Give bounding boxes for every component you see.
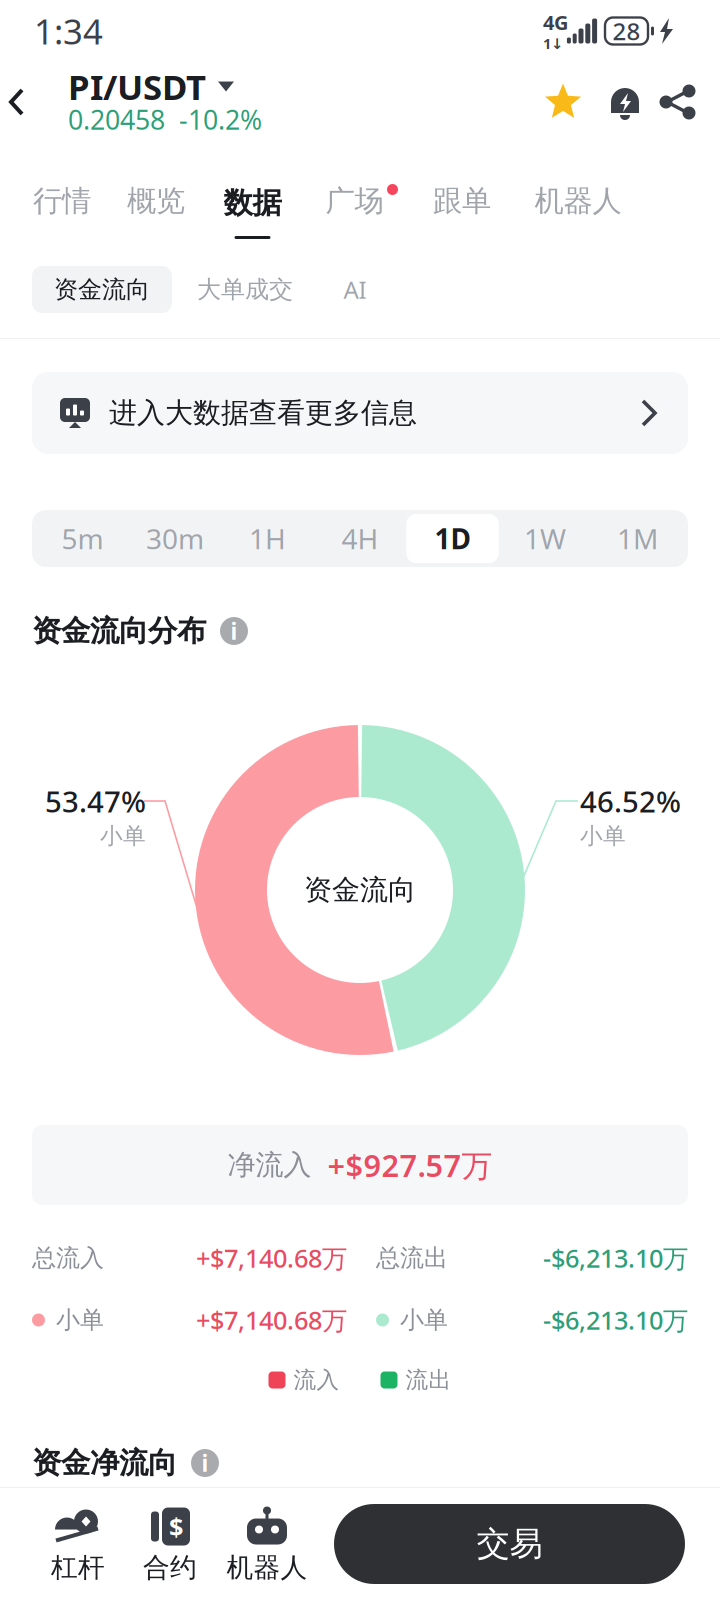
button[interactable]: Back bbox=[0, 62, 48, 142]
button[interactable]: PI/USDT bbox=[68, 62, 368, 142]
staticText: 1D bbox=[434, 520, 470, 557]
button[interactable]: 4H bbox=[314, 514, 406, 563]
staticText: 总流出 bbox=[376, 1243, 448, 1273]
staticText: 53.47% bbox=[45, 781, 146, 820]
staticText: 30m bbox=[146, 520, 204, 557]
staticText: 杠杆 bbox=[51, 1551, 105, 1584]
staticText: 小单 bbox=[580, 822, 626, 850]
staticText: 46.52% bbox=[580, 781, 681, 820]
button[interactable]: 进入大数据查看更多信息 bbox=[32, 372, 688, 454]
button[interactable]: Price alert bbox=[594, 62, 656, 142]
staticText: 1H bbox=[249, 520, 286, 557]
staticText: -$6,213.10万 bbox=[543, 1241, 688, 1275]
button[interactable]: Add to favourites bbox=[532, 62, 594, 142]
staticText: 小单 bbox=[400, 1305, 448, 1335]
button[interactable]: 跟单 bbox=[407, 180, 517, 241]
staticText: 1M bbox=[617, 520, 658, 557]
staticText: PI/USDT bbox=[68, 63, 206, 109]
staticText: 小单 bbox=[56, 1305, 104, 1335]
button[interactable]: 杠杆 bbox=[32, 1487, 124, 1600]
button[interactable]: 1M bbox=[591, 514, 684, 563]
button[interactable]: $ bbox=[124, 1487, 216, 1600]
staticText: 行情 bbox=[33, 183, 91, 219]
staticText: 概览 bbox=[127, 183, 185, 219]
staticText: 跟单 bbox=[433, 183, 491, 219]
button[interactable]: Share bbox=[656, 62, 700, 142]
staticText: 28 bbox=[612, 15, 640, 47]
staticText: 1↓ bbox=[543, 33, 563, 53]
button[interactable]: 交易 bbox=[334, 1504, 685, 1584]
button[interactable]: 广场 bbox=[302, 180, 407, 241]
button[interactable]: 1H bbox=[221, 514, 314, 563]
staticText: 1:34 bbox=[34, 8, 103, 54]
staticText: 0.20458 -10.2% bbox=[68, 102, 262, 137]
button[interactable]: 1D bbox=[406, 514, 499, 563]
staticText: 资金流向 bbox=[304, 873, 416, 907]
button[interactable]: 资金流向 bbox=[32, 266, 172, 313]
staticText: 交易 bbox=[476, 1523, 542, 1564]
staticText: 1W bbox=[524, 520, 566, 557]
staticText: 流入 bbox=[293, 1366, 339, 1394]
staticText: 广场 bbox=[325, 183, 383, 219]
staticText: i bbox=[230, 616, 237, 646]
staticText: 4G bbox=[543, 9, 568, 36]
button[interactable]: 大单成交 bbox=[172, 266, 318, 313]
staticText: 进入大数据查看更多信息 bbox=[109, 396, 417, 430]
staticText: 5m bbox=[61, 520, 103, 557]
button[interactable]: 行情 bbox=[15, 180, 109, 241]
staticText: 资金净流向 bbox=[32, 1445, 177, 1481]
staticText: 净流入 bbox=[227, 1148, 311, 1182]
staticText: i bbox=[201, 1448, 208, 1478]
staticText: 合约 bbox=[143, 1551, 197, 1584]
staticText: +$927.57万 bbox=[327, 1145, 492, 1185]
button[interactable]: 30m bbox=[129, 514, 221, 563]
staticText: 4H bbox=[341, 520, 378, 557]
button[interactable]: 1W bbox=[499, 514, 591, 563]
staticText: -$6,213.10万 bbox=[543, 1303, 688, 1337]
button[interactable]: 概览 bbox=[109, 180, 203, 241]
button[interactable]: 数据 bbox=[203, 180, 302, 241]
staticText: 总流入 bbox=[32, 1243, 104, 1273]
button[interactable]: 5m bbox=[36, 514, 129, 563]
staticText: +$7,140.68万 bbox=[196, 1303, 347, 1337]
staticText: 大单成交 bbox=[197, 275, 293, 304]
staticText: 资金流向 bbox=[54, 275, 150, 304]
staticText: 资金流向分布 bbox=[32, 613, 206, 649]
button[interactable]: 机器人 bbox=[517, 180, 639, 241]
staticText: 流出 bbox=[405, 1366, 451, 1394]
staticText: +$7,140.68万 bbox=[196, 1241, 347, 1275]
button[interactable]: AI bbox=[318, 266, 392, 313]
staticText: 机器人 bbox=[534, 183, 621, 219]
button[interactable]: 机器人 bbox=[216, 1487, 318, 1600]
staticText: 机器人 bbox=[226, 1551, 307, 1584]
staticText: 数据 bbox=[223, 185, 281, 221]
staticText: AI bbox=[343, 274, 366, 305]
staticText: $ bbox=[169, 1510, 183, 1543]
staticText: 小单 bbox=[100, 822, 146, 850]
